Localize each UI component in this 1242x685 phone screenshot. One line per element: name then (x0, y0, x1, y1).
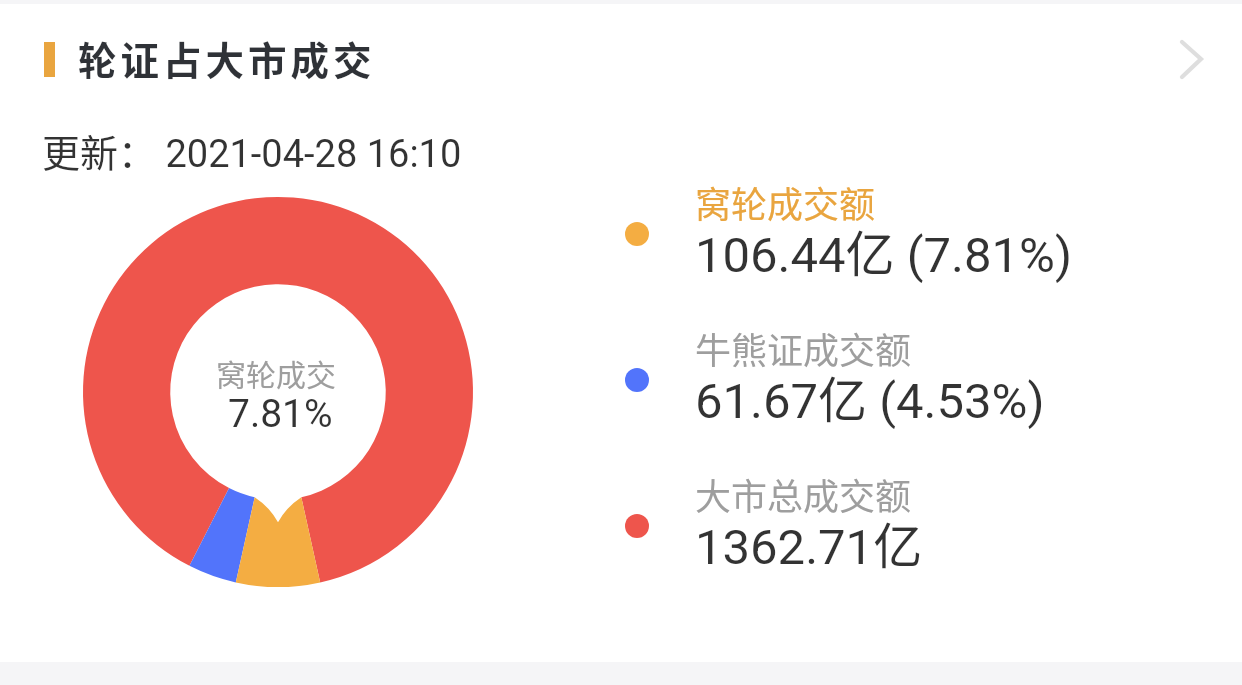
staticText: 1362.71亿 (695, 507, 923, 578)
button[interactable]: 窝轮成交额 (600, 176, 1160, 316)
staticText: 窝轮成交额 (695, 176, 876, 228)
button[interactable]: 牛熊证成交额 (600, 322, 1160, 462)
button[interactable]: 轮证占大市成交 (0, 0, 1242, 118)
staticText: 窝轮成交 (216, 351, 336, 394)
button[interactable]: More details (1164, 24, 1234, 94)
staticText: 61.67亿 (4.53%) (695, 361, 1045, 432)
staticText: 更新： 2021-04-28 16:10 (42, 123, 462, 178)
staticText: 106.44亿 (7.81%) (695, 215, 1073, 286)
button[interactable]: 大市总成交额 (600, 468, 1160, 608)
staticText: 轮证占大市成交 (78, 30, 376, 86)
staticText: 7.81% (228, 391, 333, 437)
staticText: 大市总成交额 (695, 468, 912, 520)
staticText: 牛熊证成交额 (695, 322, 912, 374)
